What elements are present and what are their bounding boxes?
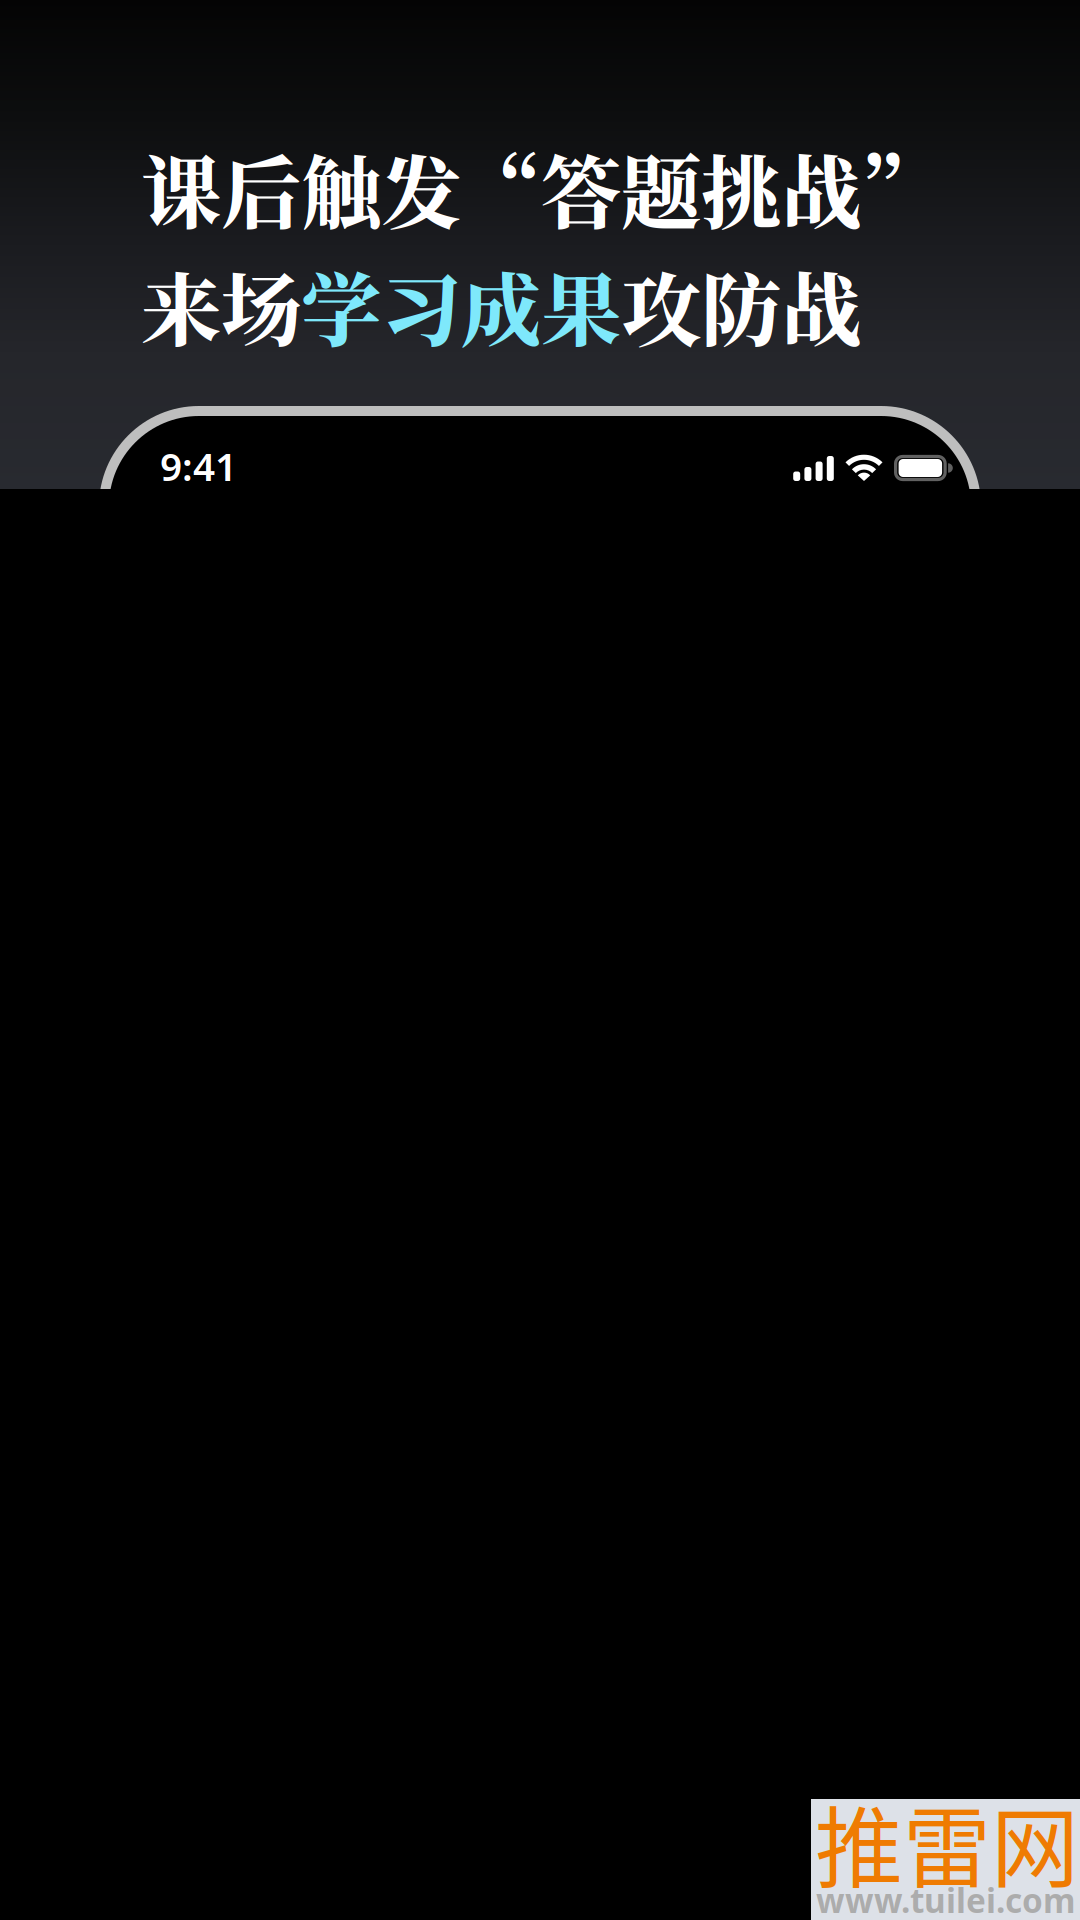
staticText: www.tuilei.com (816, 1878, 1076, 1920)
staticText: 推雷网 (815, 1778, 1079, 1905)
staticText: 来场 (141, 247, 301, 363)
staticText: 9:41 (160, 440, 237, 492)
staticText: 课后触发“答题挑战” (141, 130, 941, 245)
button[interactable]: 课后触发“答题挑战” (0, 0, 1080, 489)
staticText: 学习成果 (301, 247, 621, 363)
staticText: 攻防战 (621, 247, 861, 363)
button[interactable]: 推雷网 (811, 1799, 1080, 1920)
